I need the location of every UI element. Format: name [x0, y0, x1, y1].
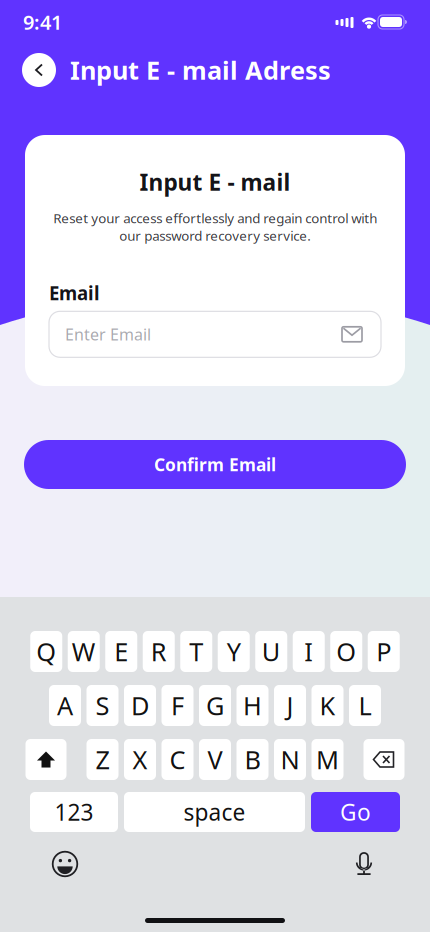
staticText: W	[72, 635, 96, 668]
button[interactable]: K	[311, 685, 343, 726]
staticText: U	[262, 635, 281, 668]
button[interactable]: C	[161, 739, 193, 780]
button[interactable]: Go	[311, 792, 400, 832]
button[interactable]: P	[368, 631, 400, 672]
staticText: D	[131, 689, 149, 722]
button[interactable]: Delete	[363, 739, 404, 780]
button[interactable]: Confirm Email	[24, 440, 406, 489]
button[interactable]: L	[349, 685, 381, 726]
staticText: Reset your access effortlessly and regai…	[53, 209, 377, 244]
staticText: X	[132, 743, 147, 776]
staticText: S	[95, 689, 109, 722]
staticText: I	[304, 635, 313, 668]
button[interactable]: N	[274, 739, 306, 780]
staticText: M	[316, 743, 339, 776]
staticText: Enter Email	[65, 324, 151, 345]
button[interactable]: A	[49, 685, 81, 726]
staticText: Go	[340, 797, 371, 827]
button[interactable]: E	[105, 631, 137, 672]
staticText: G	[206, 689, 224, 722]
button[interactable]: V	[199, 739, 231, 780]
staticText: V	[207, 743, 222, 776]
staticText: space	[183, 797, 245, 827]
button[interactable]: Emoji	[43, 842, 87, 886]
staticText: N	[280, 743, 299, 776]
staticText: Z	[95, 743, 109, 776]
button[interactable]: W	[68, 631, 100, 672]
staticText: F	[171, 689, 184, 722]
staticText: C	[169, 743, 185, 776]
staticText: H	[243, 689, 262, 722]
staticText: J	[286, 689, 293, 722]
staticText: 9:41	[23, 9, 62, 35]
button[interactable]: Z	[86, 739, 118, 780]
staticText: T	[189, 635, 203, 668]
button[interactable]: I	[293, 631, 325, 672]
staticText: A	[57, 689, 73, 722]
button[interactable]: Q	[30, 631, 62, 672]
button[interactable]: H	[236, 685, 268, 726]
staticText: L	[358, 689, 371, 722]
button[interactable]: X	[124, 739, 156, 780]
button[interactable]: O	[330, 631, 362, 672]
button[interactable]: Back	[17, 48, 61, 92]
button[interactable]: R	[143, 631, 175, 672]
staticText: Input E - mail	[139, 167, 290, 197]
button[interactable]: B	[236, 739, 268, 780]
button[interactable]: T	[180, 631, 212, 672]
button[interactable]: U	[255, 631, 287, 672]
staticText: Input E - mail Adress	[70, 53, 331, 87]
staticText: K	[319, 689, 335, 722]
staticText: 123	[54, 797, 93, 827]
staticText: P	[376, 635, 391, 668]
button[interactable]: Shift	[25, 739, 66, 780]
button[interactable]: space	[124, 792, 305, 832]
staticText: Y	[227, 635, 241, 668]
button[interactable]: 123	[30, 792, 118, 832]
button[interactable]: Y	[218, 631, 250, 672]
button[interactable]: G	[199, 685, 231, 726]
staticText: E	[114, 635, 128, 668]
button[interactable]: F	[161, 685, 193, 726]
button[interactable]: Dictate	[342, 842, 386, 886]
staticText: O	[336, 635, 356, 668]
staticText: B	[244, 743, 260, 776]
button[interactable]: M	[311, 739, 343, 780]
button[interactable]: J	[274, 685, 306, 726]
button[interactable]: D	[124, 685, 156, 726]
button[interactable]: S	[86, 685, 118, 726]
staticText: Q	[36, 635, 56, 668]
staticText: R	[151, 635, 167, 668]
staticText: Confirm Email	[154, 453, 276, 476]
staticText: Email	[49, 280, 100, 305]
